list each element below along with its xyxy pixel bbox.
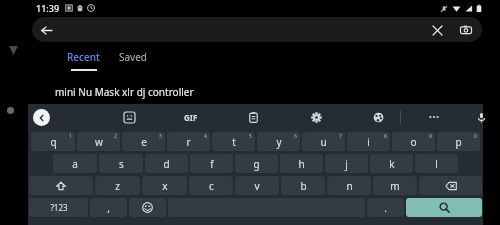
button[interactable]: o	[392, 132, 435, 151]
staticText: Saved	[119, 50, 147, 64]
button[interactable]: Emoji	[129, 198, 166, 217]
staticText: a	[72, 157, 78, 171]
staticText: s	[119, 157, 124, 171]
button[interactable]: Search	[406, 198, 482, 217]
button[interactable]: Recent	[60, 50, 107, 74]
staticText: k	[389, 157, 395, 171]
button[interactable]: Themes	[365, 104, 391, 130]
button[interactable]: .	[367, 198, 404, 217]
button[interactable]: q	[31, 132, 75, 151]
button[interactable]: x	[142, 176, 187, 195]
button[interactable]: Back	[36, 20, 56, 40]
button[interactable]: w	[77, 132, 120, 151]
staticText: f	[210, 157, 214, 171]
button[interactable]: c	[189, 176, 233, 195]
button[interactable]: z	[95, 176, 140, 195]
staticText: l	[435, 157, 438, 171]
button[interactable]: Clipboard	[240, 104, 266, 130]
button[interactable]: More options	[421, 104, 447, 130]
staticText: v	[254, 179, 260, 193]
staticText: p	[455, 135, 462, 149]
button[interactable]: mini Nu Mask xlr dj controller	[0, 82, 500, 102]
button[interactable]: e	[122, 132, 165, 151]
staticText: 11:39	[36, 2, 60, 14]
staticText: d	[163, 157, 170, 171]
button[interactable]: a	[53, 154, 97, 173]
staticText: GIF	[184, 112, 198, 123]
button[interactable]: Close toolbar	[33, 109, 50, 126]
button[interactable]: Saved	[112, 50, 154, 74]
staticText: m	[390, 179, 400, 193]
button[interactable]: Search by camera	[456, 20, 476, 40]
staticText: i	[367, 135, 370, 149]
staticText: .	[384, 201, 387, 215]
button[interactable]: Clear	[427, 20, 447, 40]
button[interactable]: Settings	[303, 104, 329, 130]
staticText: w	[95, 135, 103, 149]
staticText: 1	[69, 133, 72, 140]
button[interactable]: Backspace	[419, 176, 482, 195]
button[interactable]: ,	[90, 198, 127, 217]
button[interactable]: v	[235, 176, 279, 195]
button[interactable]: m	[373, 176, 417, 195]
staticText: o	[410, 135, 417, 149]
button[interactable]: h	[280, 154, 323, 173]
button[interactable]: p	[437, 132, 480, 151]
staticText: 6	[294, 133, 297, 140]
staticText: 4	[204, 133, 207, 140]
button[interactable]: u	[302, 132, 345, 151]
staticText: 7	[339, 133, 342, 140]
staticText: 3	[159, 133, 162, 140]
button[interactable]: b	[281, 176, 325, 195]
staticText: 8	[384, 133, 387, 140]
staticText: 0	[474, 133, 477, 140]
staticText: 9	[429, 133, 432, 140]
button[interactable]: s	[99, 154, 143, 173]
staticText: x	[162, 179, 168, 193]
staticText: u	[320, 135, 327, 149]
staticText: g	[253, 157, 260, 171]
button[interactable]: r	[167, 132, 210, 151]
button[interactable]: GIF	[178, 104, 204, 130]
button[interactable]: j	[325, 154, 368, 173]
button[interactable]: Voice input	[468, 104, 494, 130]
button[interactable]: d	[145, 154, 188, 173]
button[interactable]: i	[347, 132, 390, 151]
staticText: j	[345, 157, 348, 171]
staticText: 5	[249, 133, 252, 140]
staticText: mini Nu Mask xlr dj controller	[55, 85, 194, 99]
button[interactable]: t	[212, 132, 255, 151]
staticText: q	[50, 135, 57, 149]
staticText: r	[186, 135, 191, 149]
button[interactable]: ?123	[29, 198, 88, 217]
button[interactable]: g	[235, 154, 278, 173]
staticText: t	[232, 135, 236, 149]
staticText: e	[141, 135, 147, 149]
staticText: y	[276, 135, 282, 149]
button[interactable]: Stickers	[116, 104, 142, 130]
staticText: h	[298, 157, 305, 171]
staticText: ,	[107, 201, 110, 215]
button[interactable]: k	[370, 154, 413, 173]
button[interactable]: y	[257, 132, 300, 151]
button[interactable]: Shift	[29, 176, 93, 195]
staticText: c	[209, 179, 214, 193]
staticText: z	[115, 179, 120, 193]
staticText: n	[346, 179, 353, 193]
button[interactable]: n	[327, 176, 371, 195]
button[interactable]: l	[415, 154, 458, 173]
button[interactable]: f	[190, 154, 233, 173]
staticText: 2	[114, 133, 117, 140]
staticText: b	[300, 179, 307, 193]
staticText: ?123	[50, 202, 68, 213]
staticText: Recent	[67, 50, 100, 64]
